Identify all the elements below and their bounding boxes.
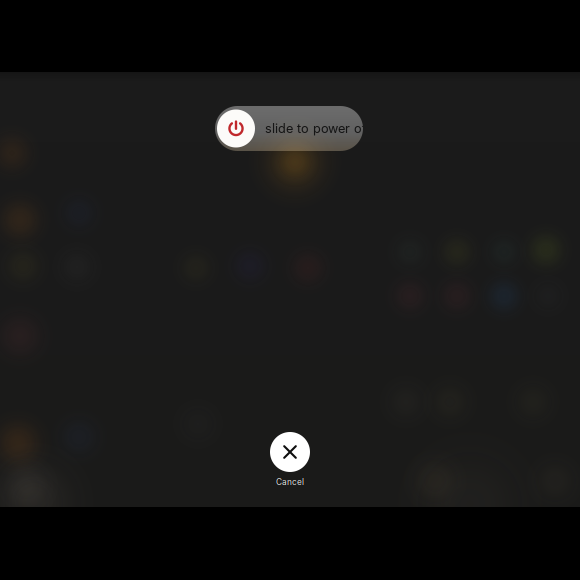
button[interactable]: Cancel <box>245 432 335 487</box>
button[interactable]: slide to power off <box>215 106 363 151</box>
staticText: Cancel <box>276 477 304 487</box>
staticText: slide to power off <box>265 121 371 136</box>
